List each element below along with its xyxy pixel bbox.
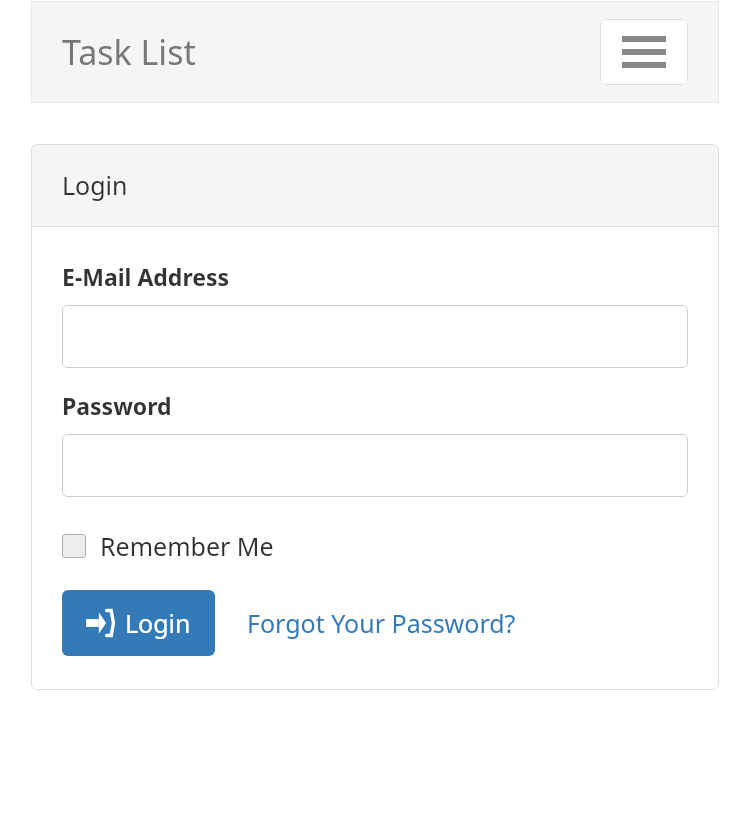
staticText: Password: [62, 390, 172, 421]
button[interactable]: [62, 434, 688, 497]
button[interactable]: [62, 305, 688, 368]
staticText: Remember Me: [100, 529, 274, 563]
button[interactable]: Task List: [62, 29, 196, 75]
button[interactable]: Login: [62, 590, 215, 656]
staticText: E-Mail Address: [62, 261, 230, 292]
button[interactable]: Toggle navigation: [600, 19, 688, 85]
button[interactable]: Remember Me: [62, 529, 274, 563]
staticText: Login: [62, 168, 128, 202]
staticText: Login: [125, 606, 191, 640]
button[interactable]: Forgot Your Password?: [247, 606, 516, 640]
